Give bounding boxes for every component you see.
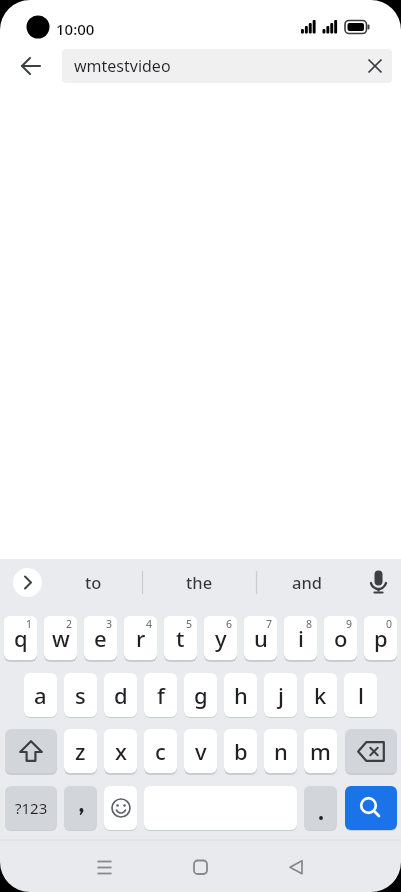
- button[interactable]: [166, 845, 236, 889]
- button[interactable]: ?123: [5, 786, 57, 830]
- staticText: 7: [266, 617, 273, 631]
- staticText: d: [114, 680, 128, 710]
- button[interactable]: [14, 50, 48, 82]
- staticText: v: [195, 736, 207, 766]
- button[interactable]: and: [267, 566, 347, 598]
- staticText: i: [298, 623, 304, 653]
- button[interactable]: [224, 729, 257, 773]
- staticText: to: [85, 571, 102, 593]
- button[interactable]: [304, 729, 337, 773]
- button[interactable]: [64, 786, 97, 830]
- staticText: y: [215, 623, 227, 653]
- staticText: 1: [26, 617, 33, 631]
- staticText: t: [176, 623, 185, 653]
- staticText: wmtestvideo: [74, 55, 171, 77]
- button[interactable]: [204, 616, 237, 660]
- staticText: 6: [226, 617, 233, 631]
- button[interactable]: [13, 568, 42, 597]
- staticText: 9: [346, 617, 353, 631]
- button[interactable]: [224, 673, 257, 717]
- button[interactable]: [64, 673, 97, 717]
- staticText: e: [94, 623, 107, 653]
- staticText: u: [254, 623, 268, 653]
- staticText: m: [310, 736, 331, 766]
- staticText: j: [278, 680, 284, 710]
- staticText: f: [157, 680, 165, 710]
- button[interactable]: [264, 673, 297, 717]
- staticText: ?123: [15, 798, 48, 818]
- staticText: n: [274, 736, 288, 766]
- button[interactable]: [184, 729, 217, 773]
- staticText: x: [115, 736, 127, 766]
- button[interactable]: [104, 786, 137, 830]
- button[interactable]: [324, 616, 357, 660]
- button[interactable]: to: [53, 566, 133, 598]
- button[interactable]: [84, 616, 117, 660]
- button[interactable]: [284, 616, 317, 660]
- button[interactable]: [184, 673, 217, 717]
- button[interactable]: [304, 673, 337, 717]
- staticText: 0: [386, 617, 393, 631]
- staticText: z: [75, 736, 86, 766]
- staticText: 3: [106, 617, 113, 631]
- staticText: c: [155, 736, 166, 766]
- staticText: h: [234, 680, 248, 710]
- button[interactable]: [244, 616, 277, 660]
- staticText: a: [34, 680, 47, 710]
- staticText: 10:00: [56, 19, 95, 39]
- staticText: o: [334, 623, 348, 653]
- button[interactable]: [70, 845, 140, 889]
- button[interactable]: [44, 616, 77, 660]
- staticText: s: [75, 680, 86, 710]
- button[interactable]: [64, 729, 97, 773]
- button[interactable]: [144, 729, 177, 773]
- staticText: k: [314, 680, 327, 710]
- button[interactable]: [4, 616, 37, 660]
- button[interactable]: [24, 673, 57, 717]
- staticText: p: [374, 623, 388, 653]
- staticText: w: [52, 623, 70, 653]
- staticText: 2: [66, 617, 73, 631]
- staticText: b: [234, 736, 248, 766]
- staticText: and: [292, 571, 323, 593]
- button[interactable]: [124, 616, 157, 660]
- staticText: 4: [146, 617, 153, 631]
- button[interactable]: [264, 729, 297, 773]
- staticText: l: [358, 680, 364, 710]
- button[interactable]: [345, 786, 397, 830]
- button[interactable]: wmtestvideo: [62, 49, 392, 83]
- staticText: 5: [186, 617, 193, 631]
- button[interactable]: [5, 729, 57, 773]
- button[interactable]: [262, 845, 332, 889]
- button[interactable]: [144, 673, 177, 717]
- staticText: 8: [306, 617, 313, 631]
- button[interactable]: [345, 729, 397, 773]
- button[interactable]: the: [159, 566, 239, 598]
- button[interactable]: [164, 616, 197, 660]
- button[interactable]: [104, 673, 137, 717]
- staticText: q: [14, 623, 28, 653]
- button[interactable]: [344, 673, 377, 717]
- button[interactable]: [104, 729, 137, 773]
- button[interactable]: [364, 616, 397, 660]
- staticText: g: [194, 680, 208, 710]
- staticText: the: [186, 571, 213, 593]
- staticText: r: [136, 623, 146, 653]
- button[interactable]: [304, 786, 337, 830]
